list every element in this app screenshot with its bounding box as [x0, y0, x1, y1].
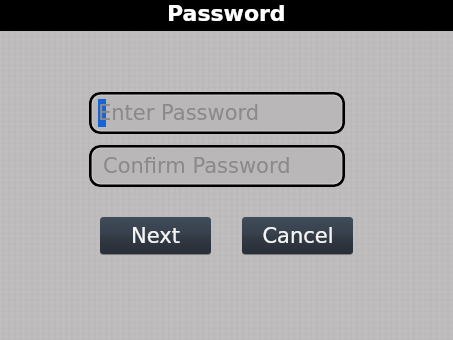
staticText: Next — [131, 224, 180, 248]
staticText: Confirm Password — [103, 154, 291, 178]
button[interactable]: Enter Password — [89, 92, 345, 134]
button[interactable]: Confirm Password — [89, 145, 345, 187]
staticText: Enter Password — [98, 101, 260, 125]
button[interactable]: Next — [100, 217, 211, 257]
button[interactable]: Cancel — [242, 217, 353, 257]
staticText: Cancel — [262, 224, 334, 248]
staticText: Password — [167, 1, 286, 27]
